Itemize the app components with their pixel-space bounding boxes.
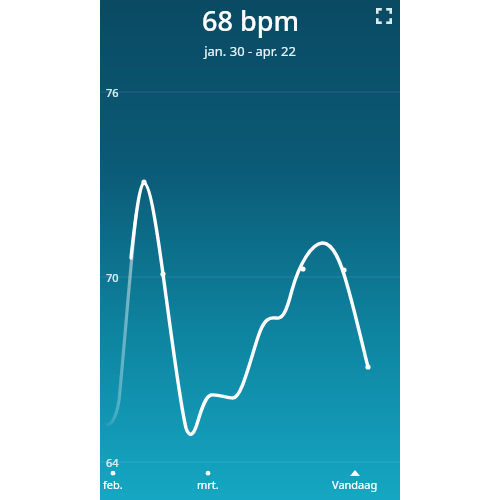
button[interactable]: Expand to full screen [368, 0, 400, 32]
staticText: 64 [106, 455, 119, 470]
staticText: jan. 30 - apr. 22 [204, 42, 296, 60]
staticText: feb. [103, 477, 123, 492]
staticText: 68 bpm [202, 2, 299, 39]
staticText: mrt. [197, 477, 219, 492]
staticText: 70 [106, 270, 119, 285]
staticText: 76 [106, 85, 119, 100]
staticText: Vandaag [332, 477, 378, 492]
